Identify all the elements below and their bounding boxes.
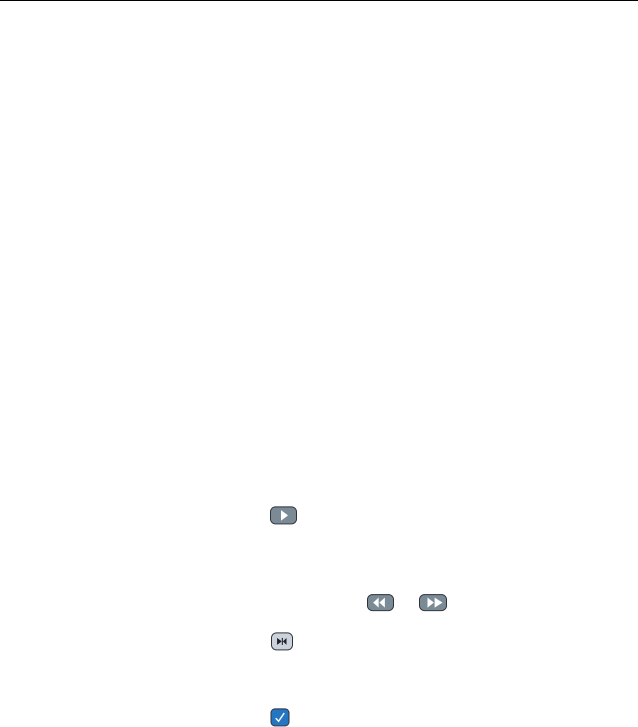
button[interactable]: Play: [270, 507, 296, 524]
staticText: Start or resume the current episode.: [24, 624, 500, 661]
button[interactable]: Done: [271, 709, 289, 726]
button[interactable]: Rewind: [367, 595, 393, 611]
button[interactable]: Fast forward: [419, 595, 446, 611]
staticText: Hold an arrow to scan through it.: [24, 702, 455, 727]
button[interactable]: Skip: [271, 633, 292, 650]
